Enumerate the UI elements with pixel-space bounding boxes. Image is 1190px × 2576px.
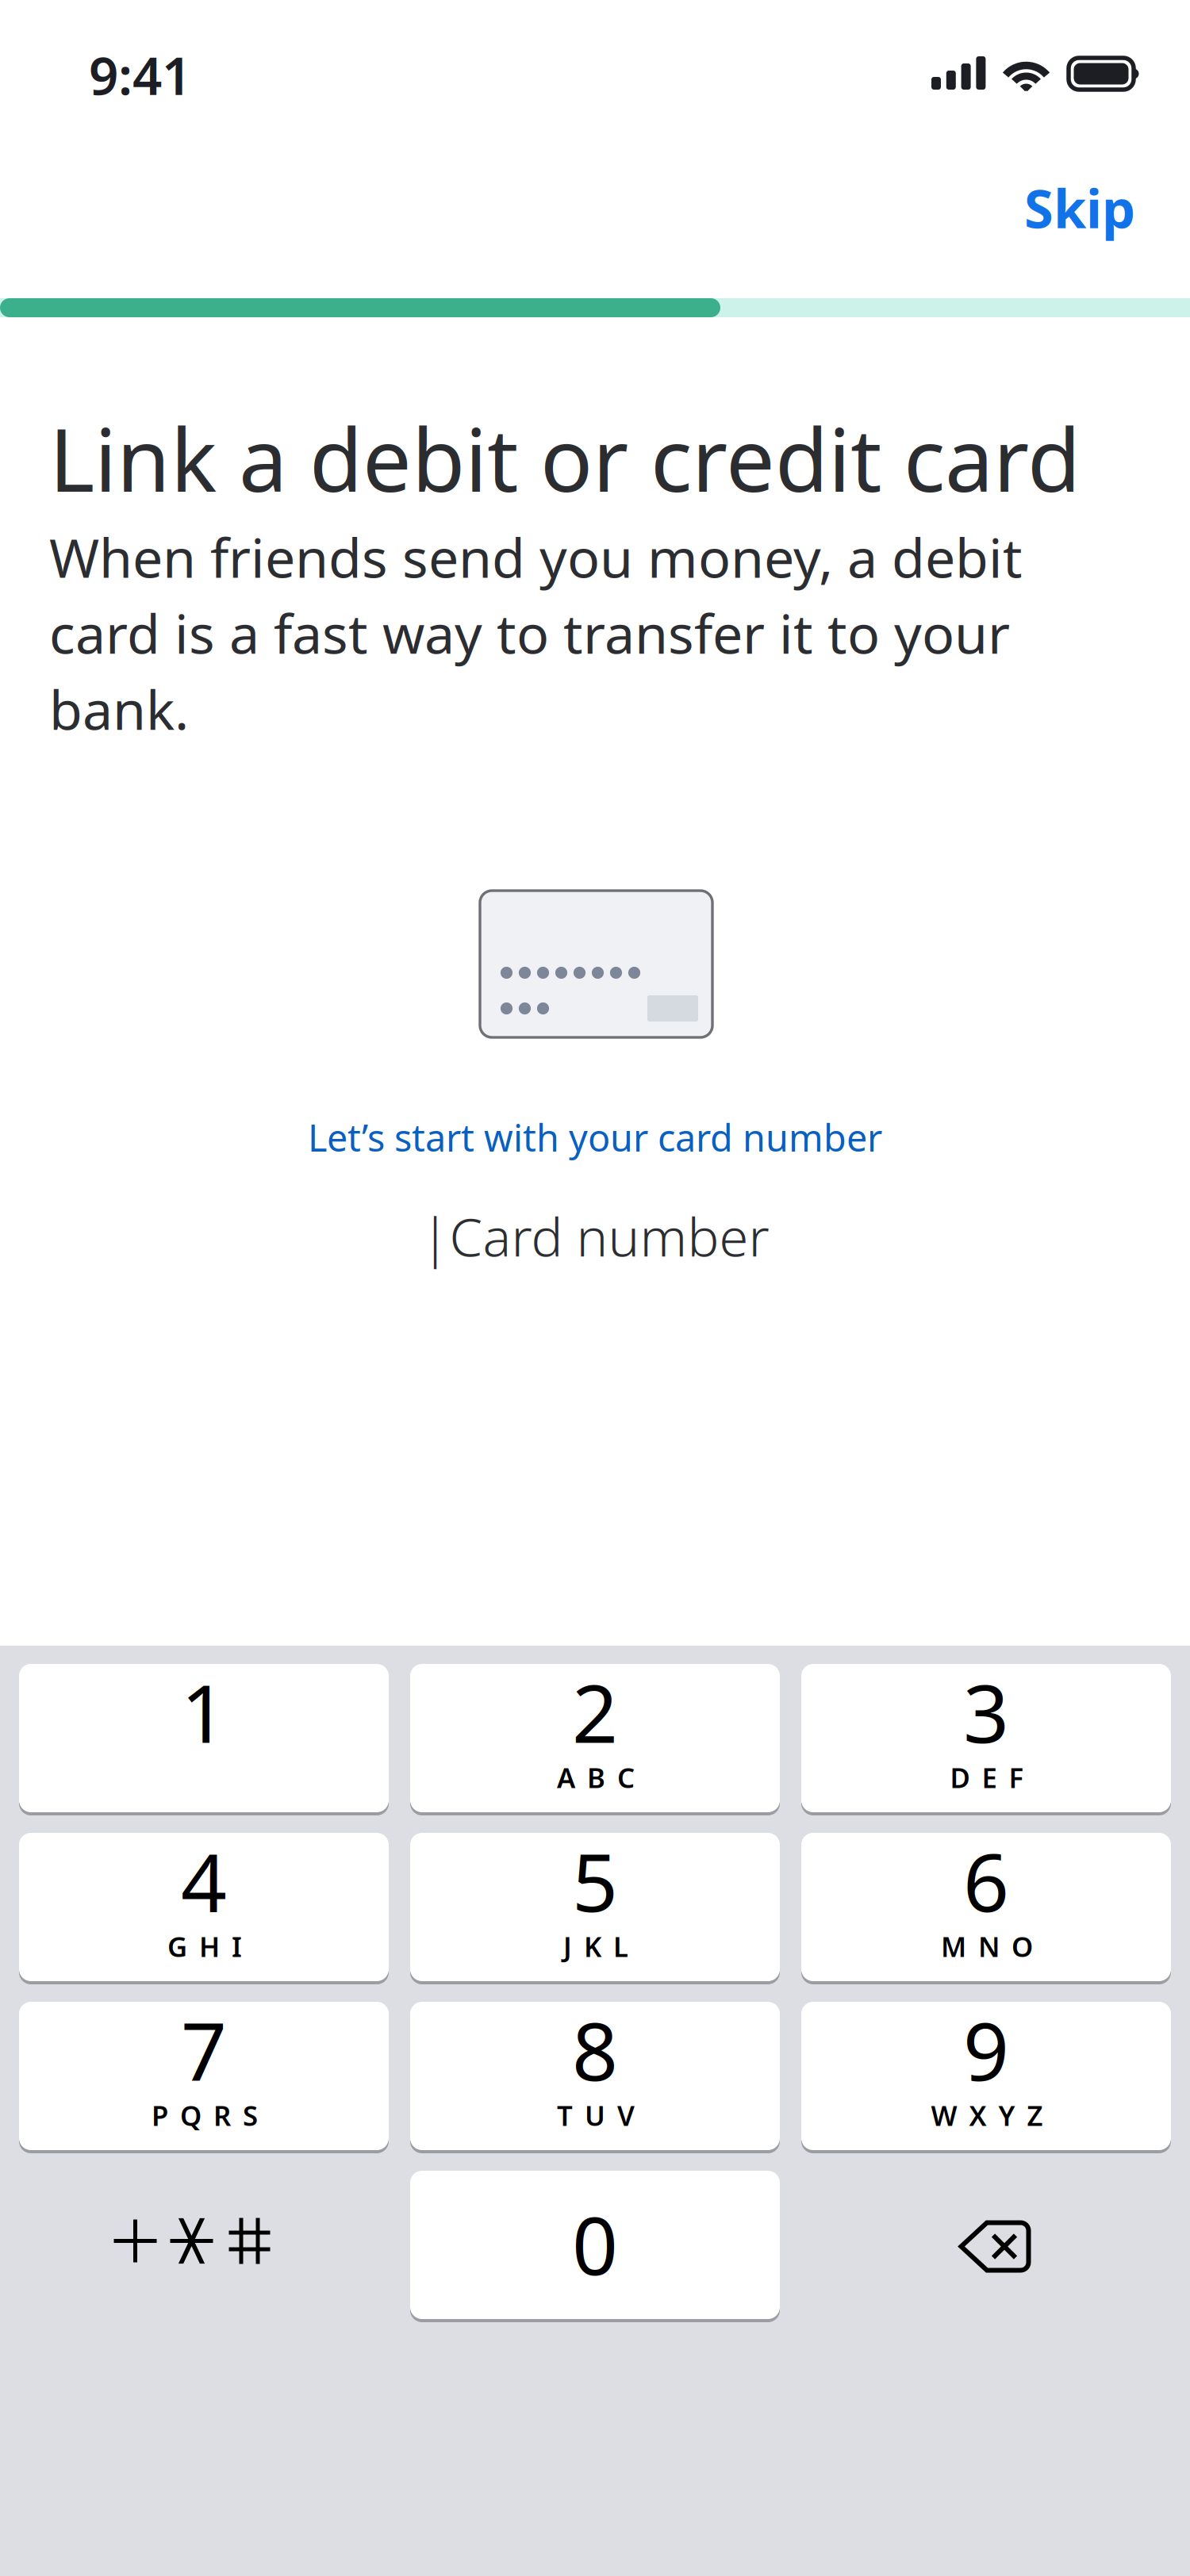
button[interactable]: 3 xyxy=(801,1664,1171,1812)
staticText: Link a debit or credit card xyxy=(49,401,1081,516)
staticText: 9 xyxy=(963,1996,1009,2103)
button[interactable]: 0 xyxy=(410,2171,780,2319)
staticText: 5 xyxy=(572,1827,618,1934)
staticText: 4 xyxy=(181,1827,227,1934)
button[interactable]: Symbols xyxy=(19,2171,389,2319)
staticText: 0 xyxy=(572,2191,618,2297)
button[interactable]: Delete xyxy=(801,2171,1171,2319)
button[interactable]: 5 xyxy=(410,1833,780,1981)
staticText: ABC xyxy=(557,1759,635,1796)
button[interactable]: 7 xyxy=(19,2002,389,2150)
staticText: TUV xyxy=(557,2097,635,2133)
staticText: WXYZ xyxy=(931,2097,1043,2133)
button[interactable]: 8 xyxy=(410,2002,780,2150)
staticText: MNO xyxy=(941,1928,1033,1965)
button[interactable]: 1 xyxy=(19,1664,389,1812)
button[interactable]: 6 xyxy=(801,1833,1171,1981)
staticText: 9:41 xyxy=(89,40,191,109)
staticText: When friends send you money, a debit car… xyxy=(49,521,1023,745)
button[interactable]: 9 xyxy=(801,2002,1171,2150)
staticText: PQRS xyxy=(152,2097,258,2133)
button[interactable]: Skip xyxy=(969,160,1135,255)
staticText: 2 xyxy=(572,1658,618,1765)
staticText: 1 xyxy=(181,1658,227,1765)
staticText: 7 xyxy=(181,1996,227,2103)
staticText: 6 xyxy=(963,1827,1009,1934)
staticText: GHI xyxy=(167,1928,242,1965)
staticText: Let’s start with your card number xyxy=(308,1113,882,1162)
button[interactable]: 2 xyxy=(410,1664,780,1812)
staticText: JKL xyxy=(563,1928,628,1965)
staticText: 8 xyxy=(572,1996,618,2103)
button[interactable]: 4 xyxy=(19,1833,389,1981)
staticText: Skip xyxy=(1024,173,1135,243)
staticText: 3 xyxy=(963,1658,1009,1765)
staticText: |Card number xyxy=(421,1201,769,1271)
staticText: DEF xyxy=(950,1759,1024,1796)
